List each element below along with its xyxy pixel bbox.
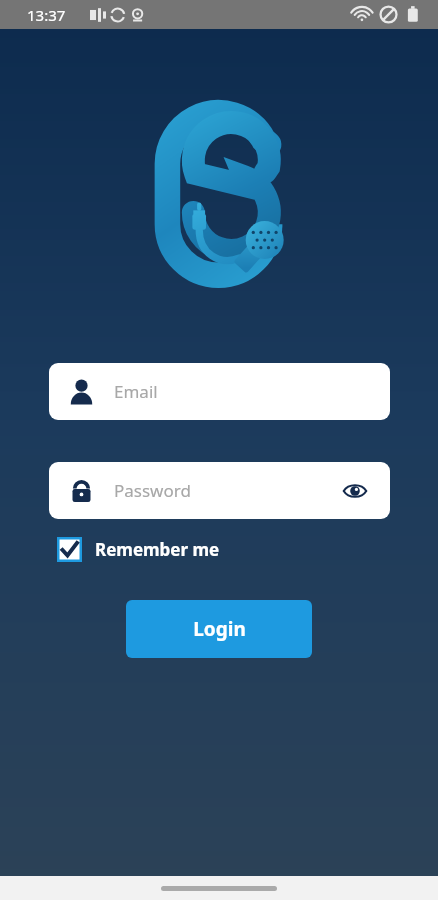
staticText: Email [114,380,158,403]
button[interactable]: Show password [340,476,370,506]
staticText: Login [193,616,246,642]
staticText: 13:37 [27,5,66,25]
button[interactable]: Email [49,363,390,420]
button[interactable]: Remember me [57,537,220,562]
button[interactable]: Password [49,462,390,519]
staticText: Remember me [95,538,220,561]
button[interactable]: Login [126,600,312,658]
staticText: Password [114,479,191,502]
